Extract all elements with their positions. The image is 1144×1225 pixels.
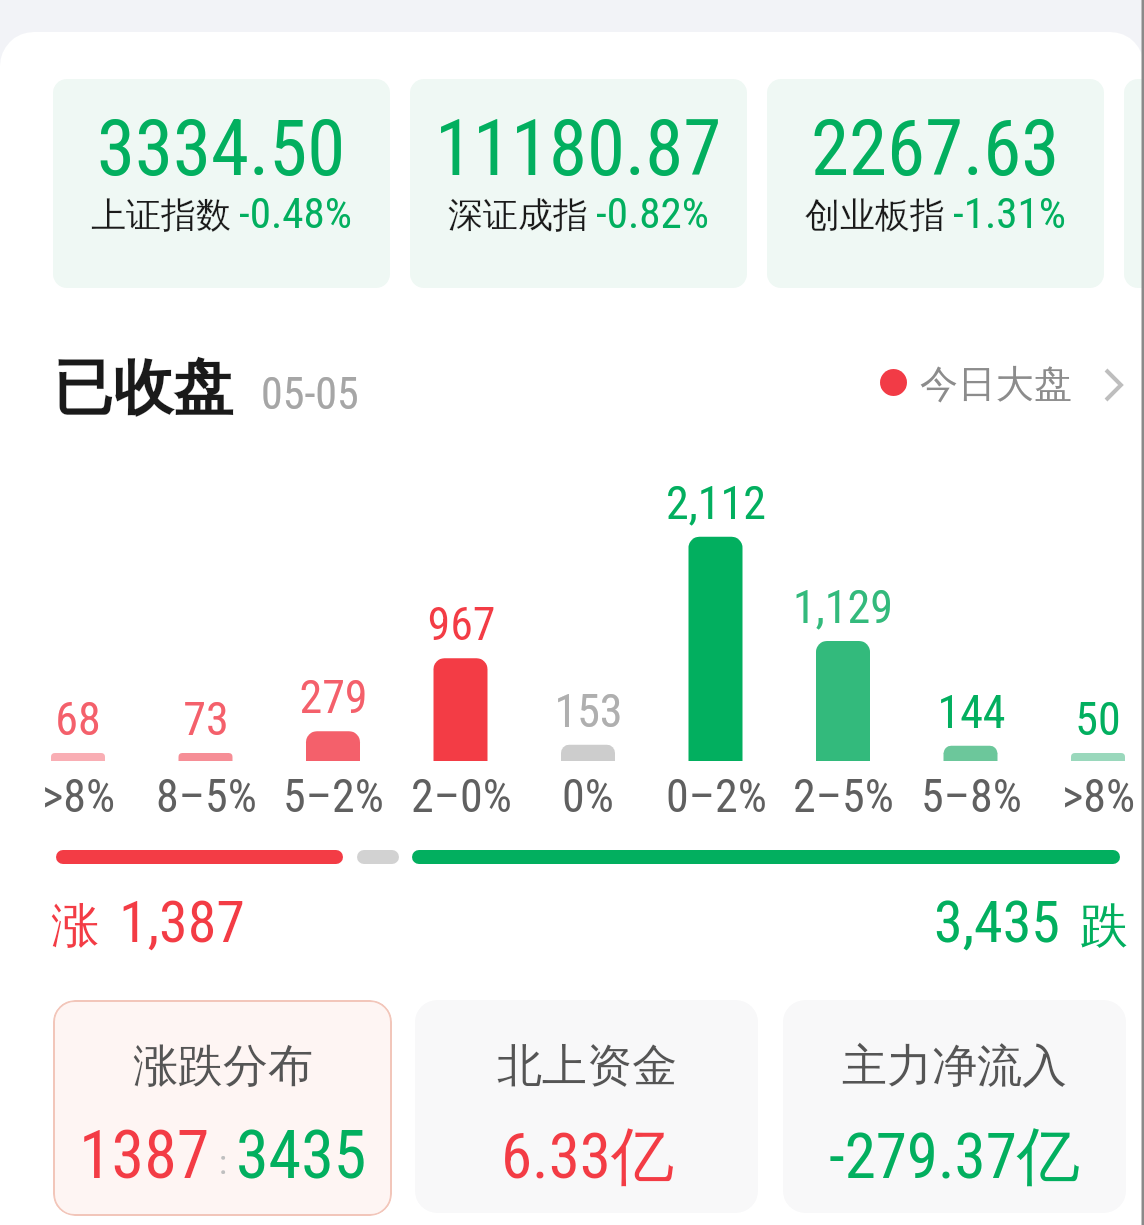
- staticText: 967: [427, 597, 496, 651]
- staticText: 05-05: [261, 368, 359, 420]
- staticText: 2–0%: [411, 769, 512, 823]
- staticText: 已收盘: [53, 350, 233, 426]
- staticText: 50: [1075, 692, 1121, 746]
- button[interactable]: 北上资金: [415, 1000, 758, 1213]
- staticText: -0.48%: [239, 188, 352, 238]
- button[interactable]: More indices: [1124, 79, 1144, 288]
- staticText: 3334.50: [97, 104, 346, 194]
- staticText: >8%: [1062, 769, 1135, 823]
- staticText: 5–8%: [921, 769, 1022, 823]
- button[interactable]: 11180.87: [410, 79, 747, 288]
- staticText: 3,435: [934, 888, 1060, 956]
- button[interactable]: 3334.50: [53, 79, 390, 288]
- staticText: -1.31%: [953, 188, 1066, 238]
- staticText: 1,387: [119, 888, 245, 956]
- staticText: >8%: [42, 769, 115, 823]
- staticText: 153: [554, 684, 623, 738]
- staticText: :: [219, 1142, 227, 1182]
- button[interactable]: 涨跌分布: [53, 1000, 392, 1216]
- staticText: -0.82%: [596, 188, 709, 238]
- staticText: 跌: [1080, 896, 1128, 956]
- button[interactable]: 2267.63: [767, 79, 1104, 288]
- staticText: 涨跌分布: [133, 1038, 313, 1095]
- staticText: 2,112: [666, 476, 766, 530]
- staticText: 北上资金: [497, 1038, 677, 1095]
- staticText: 涨: [51, 896, 99, 956]
- staticText: 5–2%: [283, 769, 384, 823]
- staticText: 1,129: [793, 580, 893, 634]
- staticText: 73: [183, 692, 229, 746]
- staticText: 144: [937, 685, 1006, 739]
- staticText: 创业板指: [805, 193, 945, 237]
- staticText: 279: [299, 670, 368, 724]
- staticText: 主力净流入: [842, 1038, 1067, 1095]
- staticText: 0–2%: [666, 769, 767, 823]
- staticText: 68: [55, 692, 101, 746]
- staticText: 今日大盘: [920, 360, 1072, 408]
- staticText: 8–5%: [156, 769, 257, 823]
- staticText: 深证成指: [448, 193, 588, 237]
- staticText: -279.37亿: [829, 1117, 1080, 1196]
- staticText: 1387: [79, 1117, 210, 1194]
- staticText: 11180.87: [435, 104, 722, 194]
- staticText: 上证指数: [91, 193, 231, 237]
- button[interactable]: 主力净流入: [783, 1000, 1126, 1213]
- staticText: 3435: [236, 1117, 367, 1194]
- other: View today's market: [1104, 368, 1123, 402]
- staticText: 2–5%: [793, 769, 894, 823]
- button[interactable]: 今日大盘: [880, 362, 1123, 410]
- staticText: 2267.63: [811, 104, 1060, 194]
- staticText: 0%: [562, 769, 614, 823]
- staticText: 6.33亿: [501, 1117, 674, 1196]
